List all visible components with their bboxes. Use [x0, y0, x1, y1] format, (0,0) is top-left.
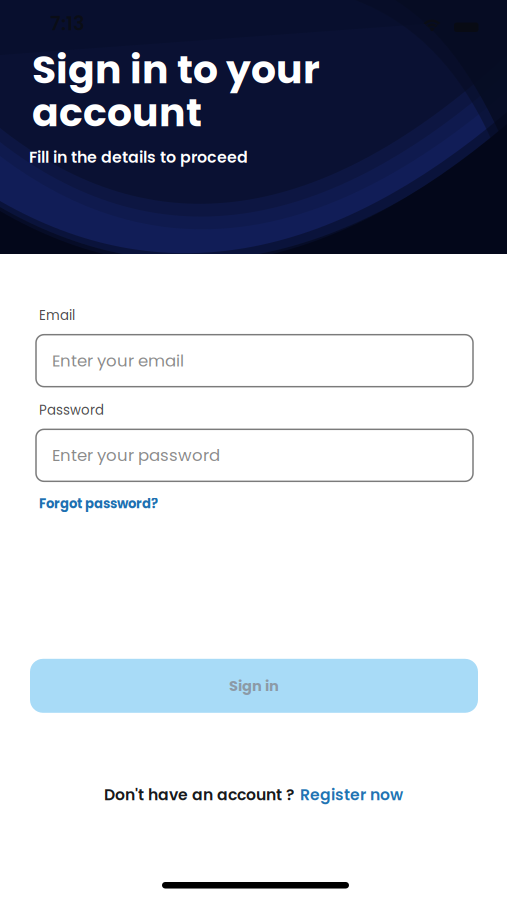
staticText: Forgot password? [39, 494, 158, 513]
staticText: account [32, 85, 202, 140]
button[interactable]: Enter your password [0, 429, 473, 481]
staticText: Register now [300, 784, 403, 806]
staticText: Fill in the details to proceed [29, 146, 248, 168]
staticText: Sign in to your [32, 42, 320, 97]
staticText: Enter your password [52, 444, 220, 467]
staticText: Password [39, 401, 104, 419]
staticText: Sign in [229, 676, 279, 696]
button[interactable]: Enter your email [0, 335, 473, 387]
staticText: Enter your email [52, 349, 184, 372]
button[interactable]: Register now [300, 784, 403, 806]
button[interactable]: Sign in [30, 659, 478, 713]
staticText: Don't have an account ? [104, 784, 294, 806]
button[interactable]: Forgot password? [39, 494, 158, 513]
staticText: Email [39, 306, 75, 325]
staticText: 7:13 [50, 10, 85, 37]
